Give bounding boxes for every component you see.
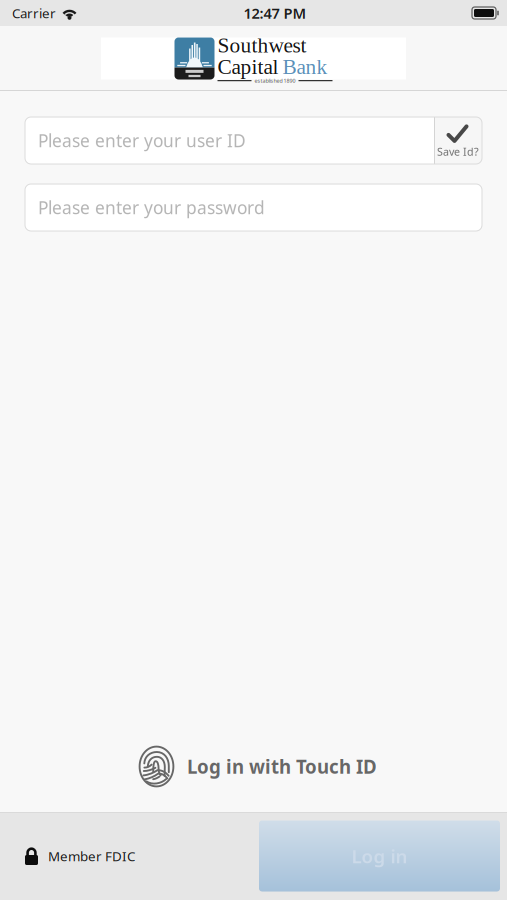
button[interactable]: Log in with Touch ID bbox=[130, 739, 377, 794]
staticText: Bank bbox=[282, 55, 327, 79]
staticText: 12:47 PM bbox=[243, 3, 306, 23]
staticText: Please enter your password bbox=[38, 196, 265, 219]
staticText: Member FDIC bbox=[48, 847, 135, 865]
staticText: established 1890 bbox=[254, 77, 295, 84]
staticText: Please enter your user ID bbox=[38, 129, 246, 152]
staticText: Log in bbox=[351, 844, 407, 868]
staticText: Save Id? bbox=[437, 144, 479, 159]
button[interactable]: Log in bbox=[259, 820, 500, 891]
staticText: Carrier bbox=[12, 4, 56, 22]
button[interactable]: Save Id bbox=[434, 117, 482, 164]
staticText: Southwest bbox=[217, 33, 306, 57]
staticText: Capital bbox=[217, 55, 278, 79]
staticText: Log in with Touch ID bbox=[187, 754, 377, 779]
